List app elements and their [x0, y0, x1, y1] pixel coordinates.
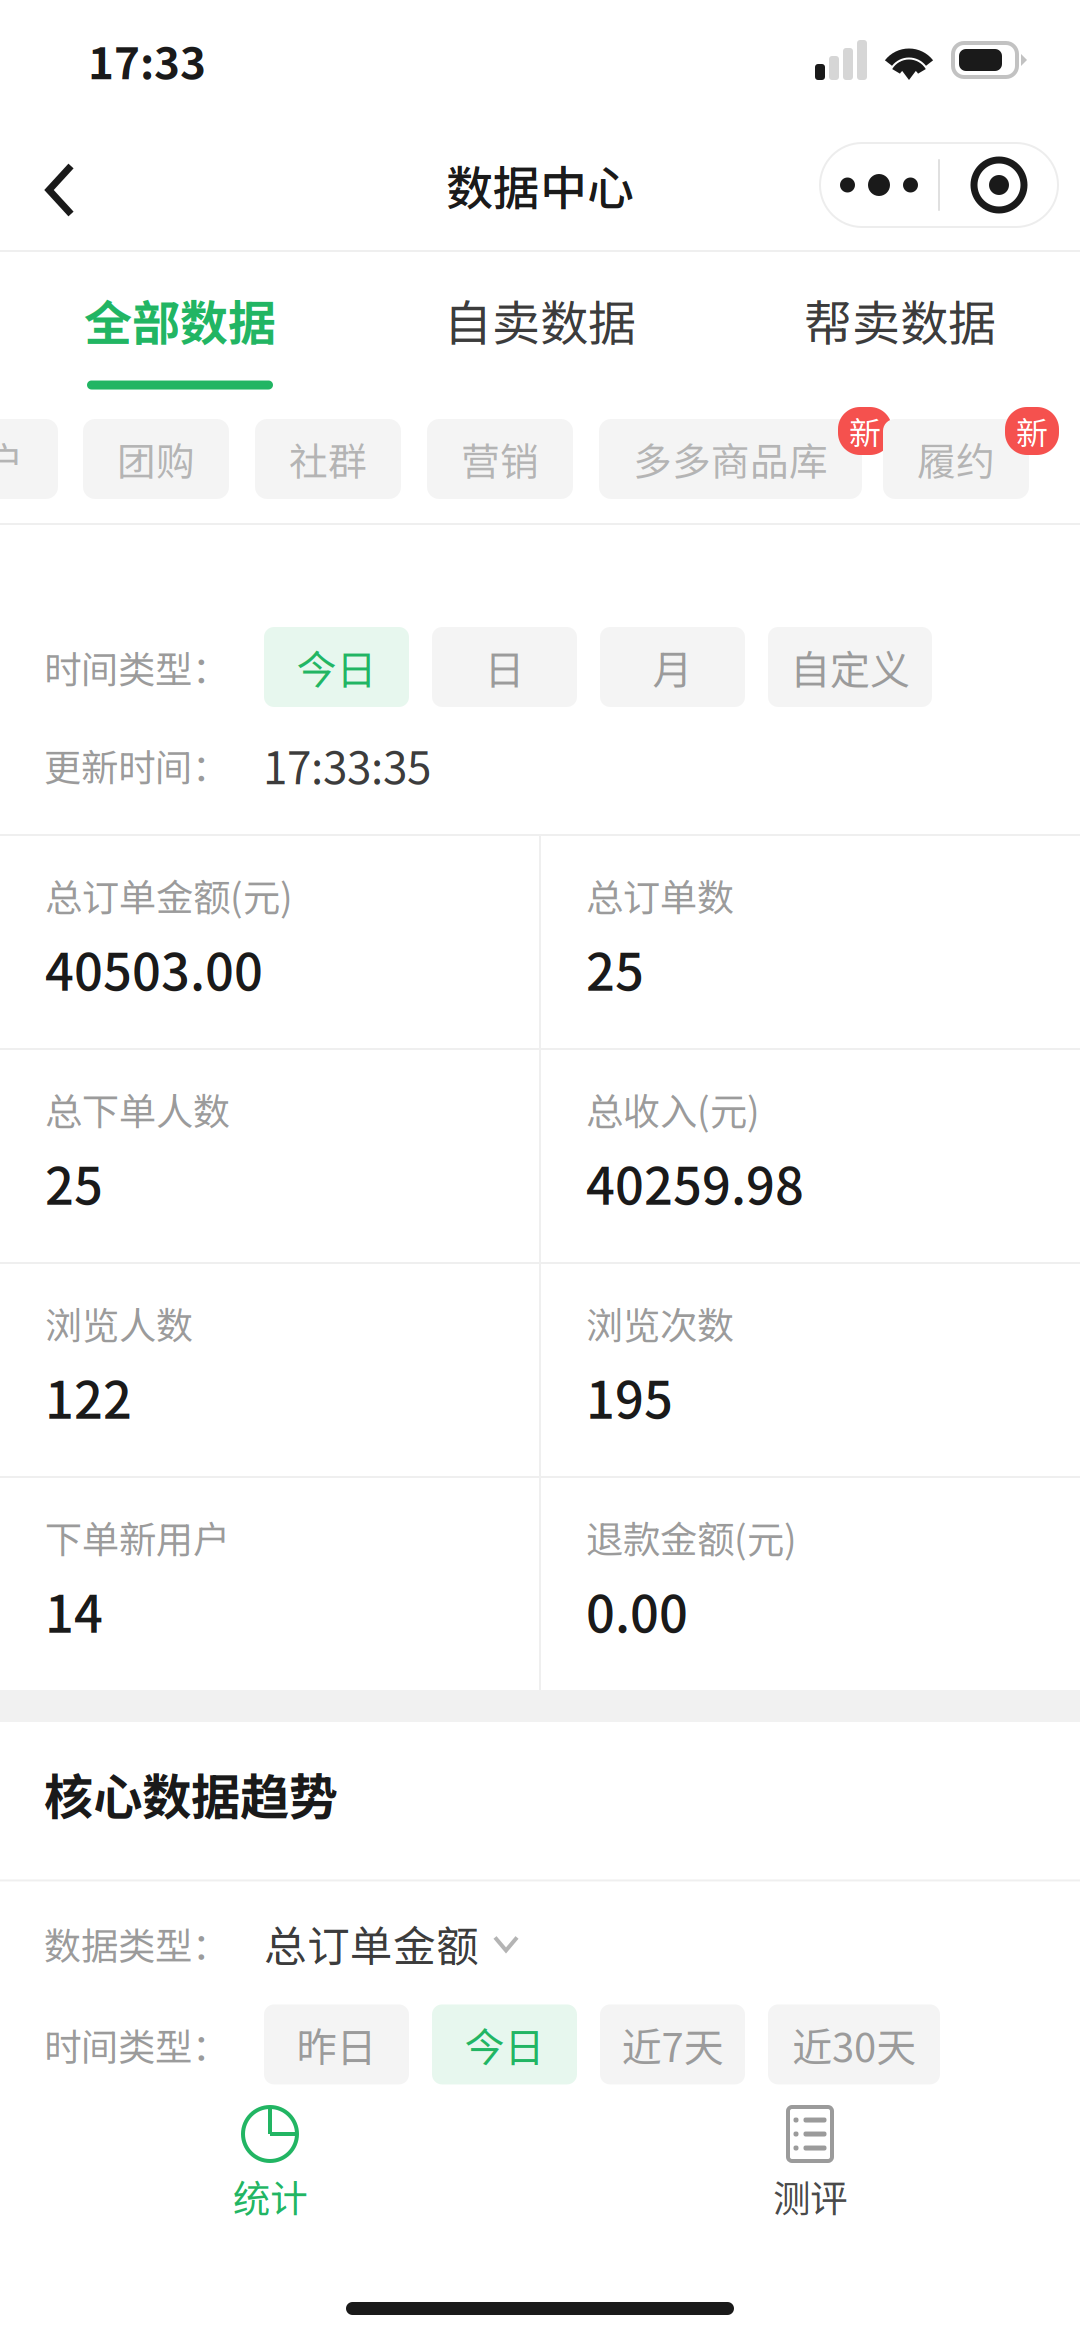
staticText: 自定义 — [790, 638, 910, 696]
staticText: 近30天 — [792, 2015, 916, 2073]
button[interactable]: 月 — [600, 627, 745, 707]
staticText: 多多商品库 — [633, 431, 828, 487]
staticText: 195 — [586, 1360, 673, 1433]
button[interactable]: 团购 — [83, 419, 229, 499]
staticText: 自卖数据 — [444, 285, 636, 354]
staticText: 退款金额(元) — [586, 1510, 797, 1564]
staticText: 40503.00 — [45, 932, 263, 1005]
staticText: 0.00 — [586, 1574, 688, 1647]
staticText: 更新时间： — [44, 738, 229, 792]
button[interactable]: 自卖数据 — [360, 252, 720, 395]
staticText: 日 — [484, 638, 524, 696]
staticText: 核心数据趋势 — [44, 1758, 338, 1829]
staticText: 总收入(元) — [586, 1082, 760, 1136]
button[interactable]: Back — [0, 120, 112, 250]
staticText: 月 — [652, 638, 692, 696]
staticText: 近7天 — [621, 2015, 723, 2073]
staticText: 总订单数 — [586, 868, 734, 922]
button[interactable]: Close — [940, 143, 1058, 227]
staticText: 17:33 — [88, 28, 206, 92]
staticText: 浏览人数 — [45, 1296, 193, 1350]
button[interactable]: 用户 — [0, 419, 58, 499]
button[interactable]: 统计 — [0, 2095, 540, 2245]
button[interactable]: 全部数据 — [0, 252, 360, 395]
button[interactable]: 今日 — [264, 627, 409, 707]
button[interactable]: 自定义 — [768, 627, 932, 707]
staticText: 昨日 — [296, 2015, 376, 2073]
staticText: 总下单人数 — [45, 1082, 230, 1136]
staticText: 今日 — [464, 2015, 544, 2073]
staticText: 帮卖数据 — [804, 285, 996, 354]
staticText: 25 — [586, 932, 644, 1005]
staticText: 履约 — [917, 431, 995, 487]
staticText: 数据中心 — [446, 151, 634, 219]
staticText: 用户 — [0, 431, 24, 487]
button[interactable]: 近7天 — [600, 2004, 745, 2084]
staticText: 14 — [45, 1574, 103, 1647]
staticText: 今日 — [296, 638, 376, 696]
staticText: 新 — [849, 408, 881, 454]
button[interactable]: 履约 — [883, 419, 1029, 499]
button[interactable]: 昨日 — [264, 2004, 409, 2084]
staticText: 新 — [1016, 408, 1048, 454]
button[interactable]: More — [820, 143, 938, 227]
staticText: 时间类型： — [44, 2017, 229, 2071]
button[interactable]: 多多商品库 — [599, 419, 862, 499]
staticText: 122 — [45, 1360, 132, 1433]
staticText: 25 — [45, 1146, 103, 1219]
button[interactable]: 营销 — [427, 419, 573, 499]
button[interactable]: 社群 — [255, 419, 401, 499]
staticText: 团购 — [117, 431, 195, 487]
staticText: 数据类型： — [44, 1916, 229, 1970]
button[interactable]: 近30天 — [768, 2004, 940, 2084]
button[interactable]: 帮卖数据 — [720, 252, 1080, 395]
staticText: 总订单金额(元) — [45, 868, 293, 922]
staticText: 40259.98 — [586, 1146, 804, 1219]
staticText: 社群 — [289, 431, 367, 487]
button[interactable]: 测评 — [540, 2095, 1080, 2245]
staticText: 测评 — [773, 2169, 847, 2223]
staticText: 统计 — [233, 2169, 307, 2223]
staticText: 时间类型： — [44, 640, 229, 694]
staticText: 全部数据 — [84, 285, 276, 354]
staticText: 浏览次数 — [586, 1296, 734, 1350]
staticText: 总订单金额 — [264, 1912, 479, 1974]
button[interactable]: 日 — [432, 627, 577, 707]
staticText: 下单新用户 — [45, 1510, 230, 1564]
staticText: 营销 — [461, 431, 539, 487]
button[interactable]: 今日 — [432, 2004, 577, 2084]
staticText: 17:33:35 — [263, 733, 431, 797]
